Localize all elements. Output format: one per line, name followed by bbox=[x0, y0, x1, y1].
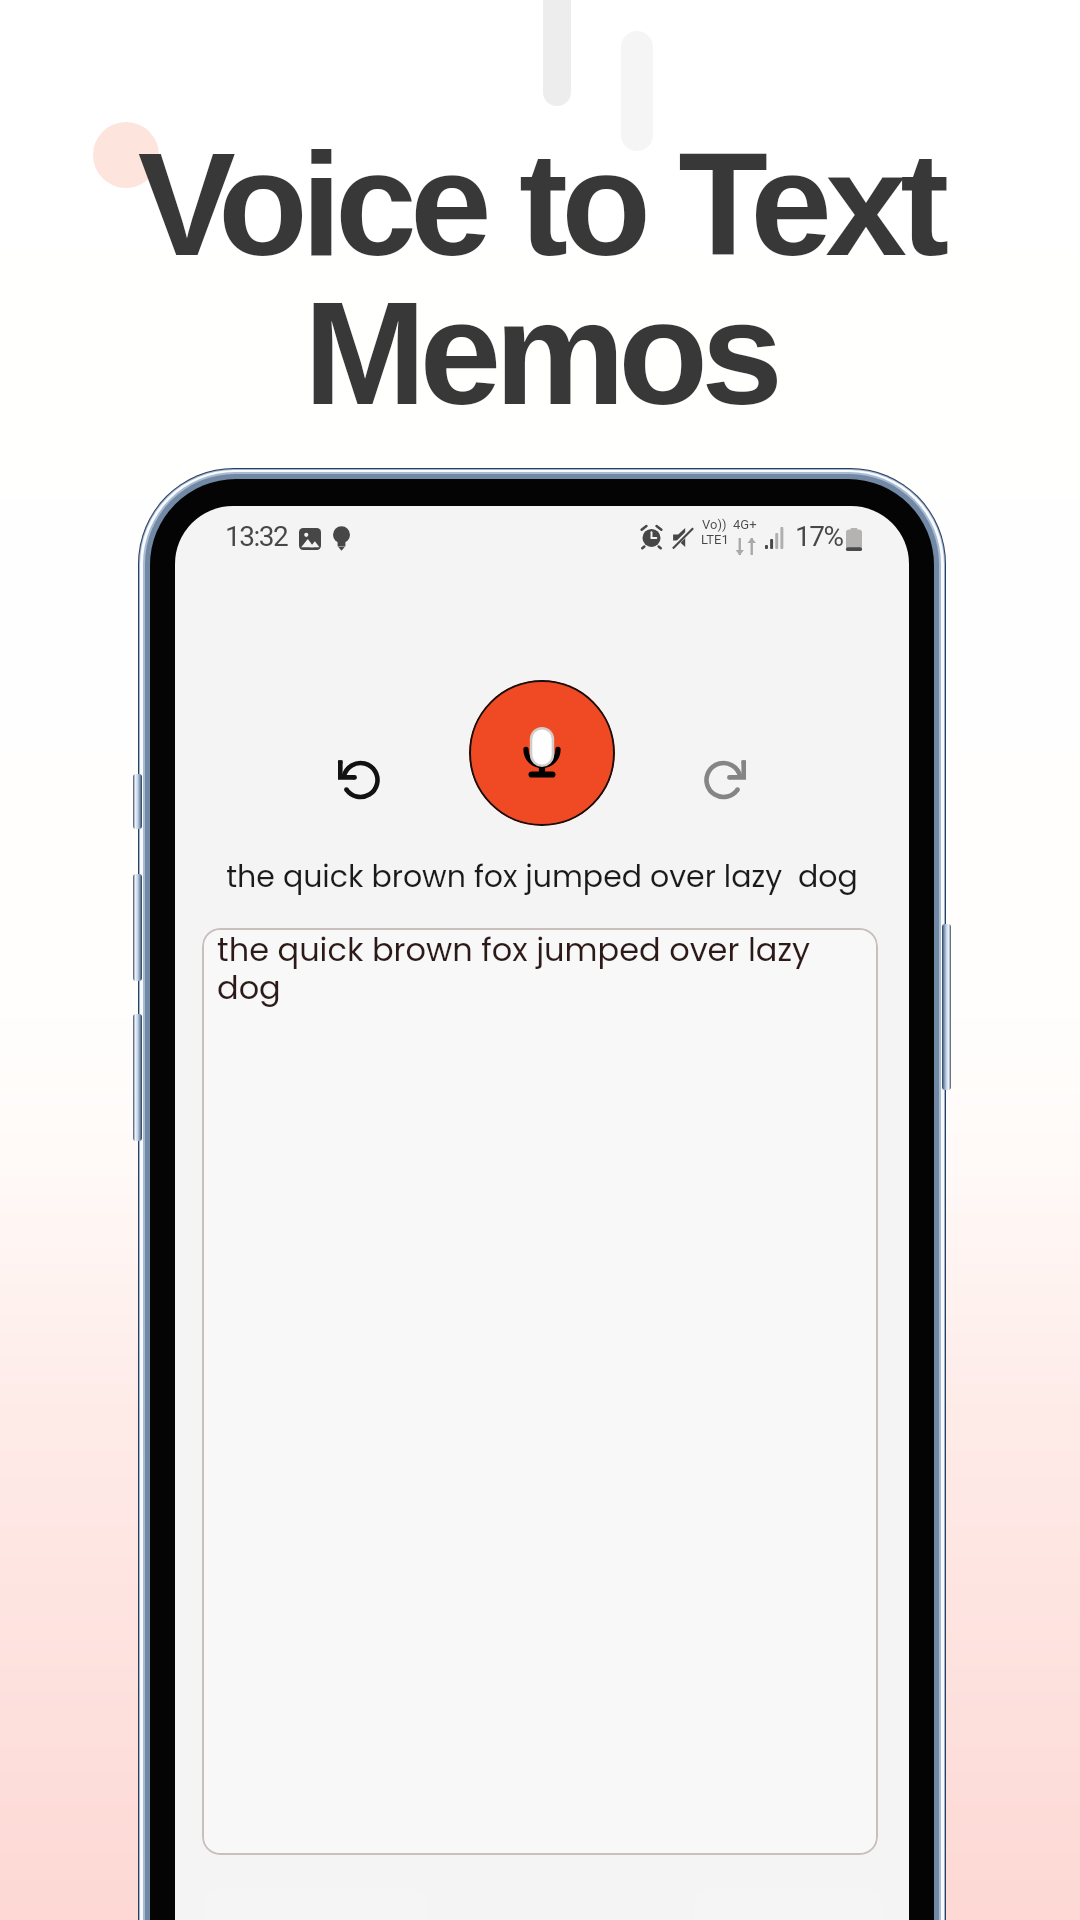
staticText: 13:32 bbox=[225, 520, 288, 553]
staticText: LTE1 bbox=[701, 532, 729, 547]
button[interactable]: Redo bbox=[678, 731, 774, 827]
button[interactable]: Record bbox=[469, 680, 615, 826]
staticText: 4G+ bbox=[733, 517, 757, 532]
staticText: the quick brown fox jumped over lazy dog bbox=[217, 928, 856, 1010]
staticText: the quick brown fox jumped over lazy dog bbox=[175, 856, 909, 898]
staticText: Voice to Text Memos bbox=[0, 122, 1080, 436]
staticText: Vo)) bbox=[702, 517, 727, 532]
button[interactable]: Undo bbox=[310, 731, 406, 827]
staticText: 17% bbox=[795, 520, 843, 553]
